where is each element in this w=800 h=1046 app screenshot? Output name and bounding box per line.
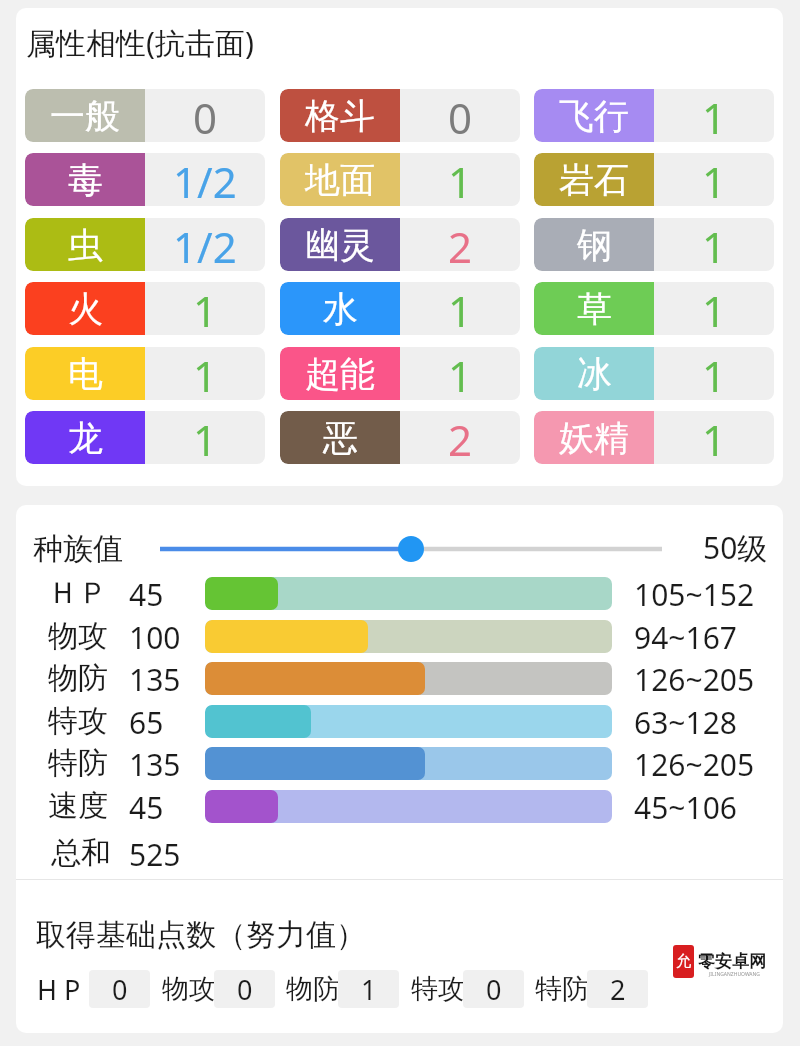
staticText: 0: [193, 89, 218, 142]
staticText: 钢: [577, 223, 612, 267]
staticText: 63~128: [634, 702, 737, 743]
staticText: 1: [448, 153, 473, 206]
staticText: H P: [37, 971, 81, 1008]
button[interactable]: 冰: [534, 347, 774, 400]
staticText: 45~106: [634, 787, 737, 828]
staticText: 草: [577, 287, 612, 331]
staticText: 94~167: [634, 617, 737, 658]
staticText: 1: [702, 347, 727, 400]
staticText: 属性相性(抗击面): [26, 22, 254, 63]
staticText: JILINGANZHUOWANG: [709, 971, 760, 978]
button[interactable]: 妖精: [534, 411, 774, 464]
button[interactable]: 龙: [25, 411, 265, 464]
staticText: 1/2: [173, 153, 237, 206]
staticText: 1: [361, 971, 377, 1008]
button[interactable]: 水: [280, 282, 520, 335]
staticText: 0: [237, 971, 253, 1008]
staticText: 1: [702, 218, 727, 271]
staticText: 2: [448, 218, 473, 271]
button[interactable]: 超能: [280, 347, 520, 400]
staticText: 135: [129, 659, 181, 700]
staticText: 妖精: [559, 416, 629, 460]
button[interactable]: 飞行: [534, 89, 774, 142]
staticText: 总和: [51, 834, 111, 872]
staticText: 1/2: [173, 218, 237, 271]
staticText: 525: [129, 834, 181, 875]
staticText: 0: [486, 971, 502, 1008]
staticText: 105~152: [634, 574, 755, 615]
button[interactable]: 物防: [286, 970, 404, 1008]
button[interactable]: 电: [25, 347, 265, 400]
staticText: 幽灵: [305, 223, 375, 267]
staticText: 飞行: [559, 94, 629, 138]
staticText: 1: [193, 282, 218, 335]
staticText: 种族值: [33, 530, 123, 568]
staticText: 126~205: [634, 659, 755, 700]
staticText: 岩石: [559, 158, 629, 202]
staticText: 1: [702, 153, 727, 206]
staticText: 特防: [48, 744, 108, 782]
button[interactable]: 虫: [25, 218, 265, 271]
staticText: 水: [323, 287, 358, 331]
staticText: 恶: [323, 416, 358, 460]
staticText: ＨＰ: [48, 574, 108, 612]
staticText: 2: [448, 411, 473, 464]
staticText: 冰: [577, 352, 612, 396]
button[interactable]: 格斗: [280, 89, 520, 142]
staticText: 2: [610, 971, 626, 1008]
button[interactable]: H P: [37, 970, 155, 1008]
staticText: 物防: [286, 972, 340, 1006]
staticText: 毒: [68, 158, 103, 202]
staticText: 速度: [48, 787, 108, 825]
staticText: 0: [112, 971, 128, 1008]
staticText: 1: [702, 89, 727, 142]
button[interactable]: 特防: [535, 970, 653, 1008]
staticText: 龙: [68, 416, 103, 460]
button[interactable]: 火: [25, 282, 265, 335]
button[interactable]: 地面: [280, 153, 520, 206]
staticText: 特防: [535, 972, 589, 1006]
staticText: 物攻: [48, 617, 108, 655]
staticText: 火: [68, 287, 103, 331]
staticText: 格斗: [305, 94, 375, 138]
button[interactable]: 草: [534, 282, 774, 335]
staticText: 零安卓网: [698, 951, 766, 972]
staticText: 1: [193, 347, 218, 400]
staticText: 1: [702, 411, 727, 464]
staticText: 45: [129, 574, 164, 615]
button[interactable]: 物攻: [162, 970, 280, 1008]
button[interactable]: 幽灵: [280, 218, 520, 271]
button[interactable]: 岩石: [534, 153, 774, 206]
staticText: 允: [676, 952, 691, 971]
staticText: 特攻: [48, 702, 108, 740]
staticText: 1: [448, 282, 473, 335]
staticText: 取得基础点数（努力值）: [36, 916, 366, 954]
staticText: 0: [448, 89, 473, 142]
staticText: 1: [448, 347, 473, 400]
staticText: 地面: [305, 158, 375, 202]
staticText: 45: [129, 787, 164, 828]
staticText: 电: [68, 352, 103, 396]
button[interactable]: 钢: [534, 218, 774, 271]
button[interactable]: 一般: [25, 89, 265, 142]
staticText: 特攻: [411, 972, 465, 1006]
staticText: 物防: [48, 659, 108, 697]
button[interactable]: 特攻: [411, 970, 529, 1008]
staticText: 1: [193, 411, 218, 464]
staticText: 虫: [68, 223, 103, 267]
staticText: 135: [129, 744, 181, 785]
staticText: 50级: [703, 527, 768, 568]
button[interactable]: 恶: [280, 411, 520, 464]
staticText: 100: [129, 617, 181, 658]
staticText: 超能: [305, 352, 375, 396]
button[interactable]: 毒: [25, 153, 265, 206]
staticText: 物攻: [162, 972, 216, 1006]
staticText: 一般: [50, 94, 120, 138]
staticText: 126~205: [634, 744, 755, 785]
staticText: 65: [129, 702, 164, 743]
staticText: 1: [702, 282, 727, 335]
